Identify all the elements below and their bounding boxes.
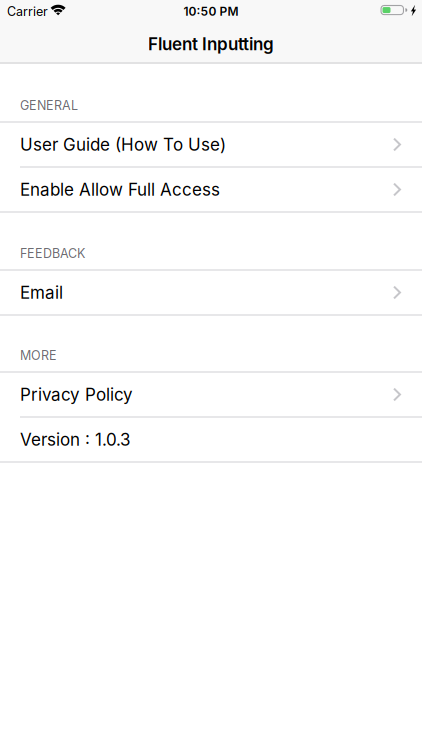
button[interactable]: Email — [0, 271, 422, 314]
staticText: FEEDBACK — [20, 246, 85, 261]
button[interactable]: Enable Allow Full Access — [0, 168, 422, 211]
button[interactable]: User Guide (How To Use) — [0, 123, 422, 166]
staticText: Version : 1.0.3 — [20, 429, 131, 450]
staticText: Privacy Policy — [20, 384, 133, 405]
staticText: MORE — [20, 348, 57, 363]
button[interactable]: Privacy Policy — [0, 373, 422, 416]
staticText: Carrier — [7, 4, 48, 19]
staticText: Enable Allow Full Access — [20, 179, 220, 200]
staticText: GENERAL — [20, 98, 78, 113]
staticText: Email — [20, 282, 63, 303]
staticText: 10:50 PM — [183, 4, 238, 19]
staticText: Fluent Inputting — [148, 34, 274, 54]
staticText: User Guide (How To Use) — [20, 134, 226, 155]
